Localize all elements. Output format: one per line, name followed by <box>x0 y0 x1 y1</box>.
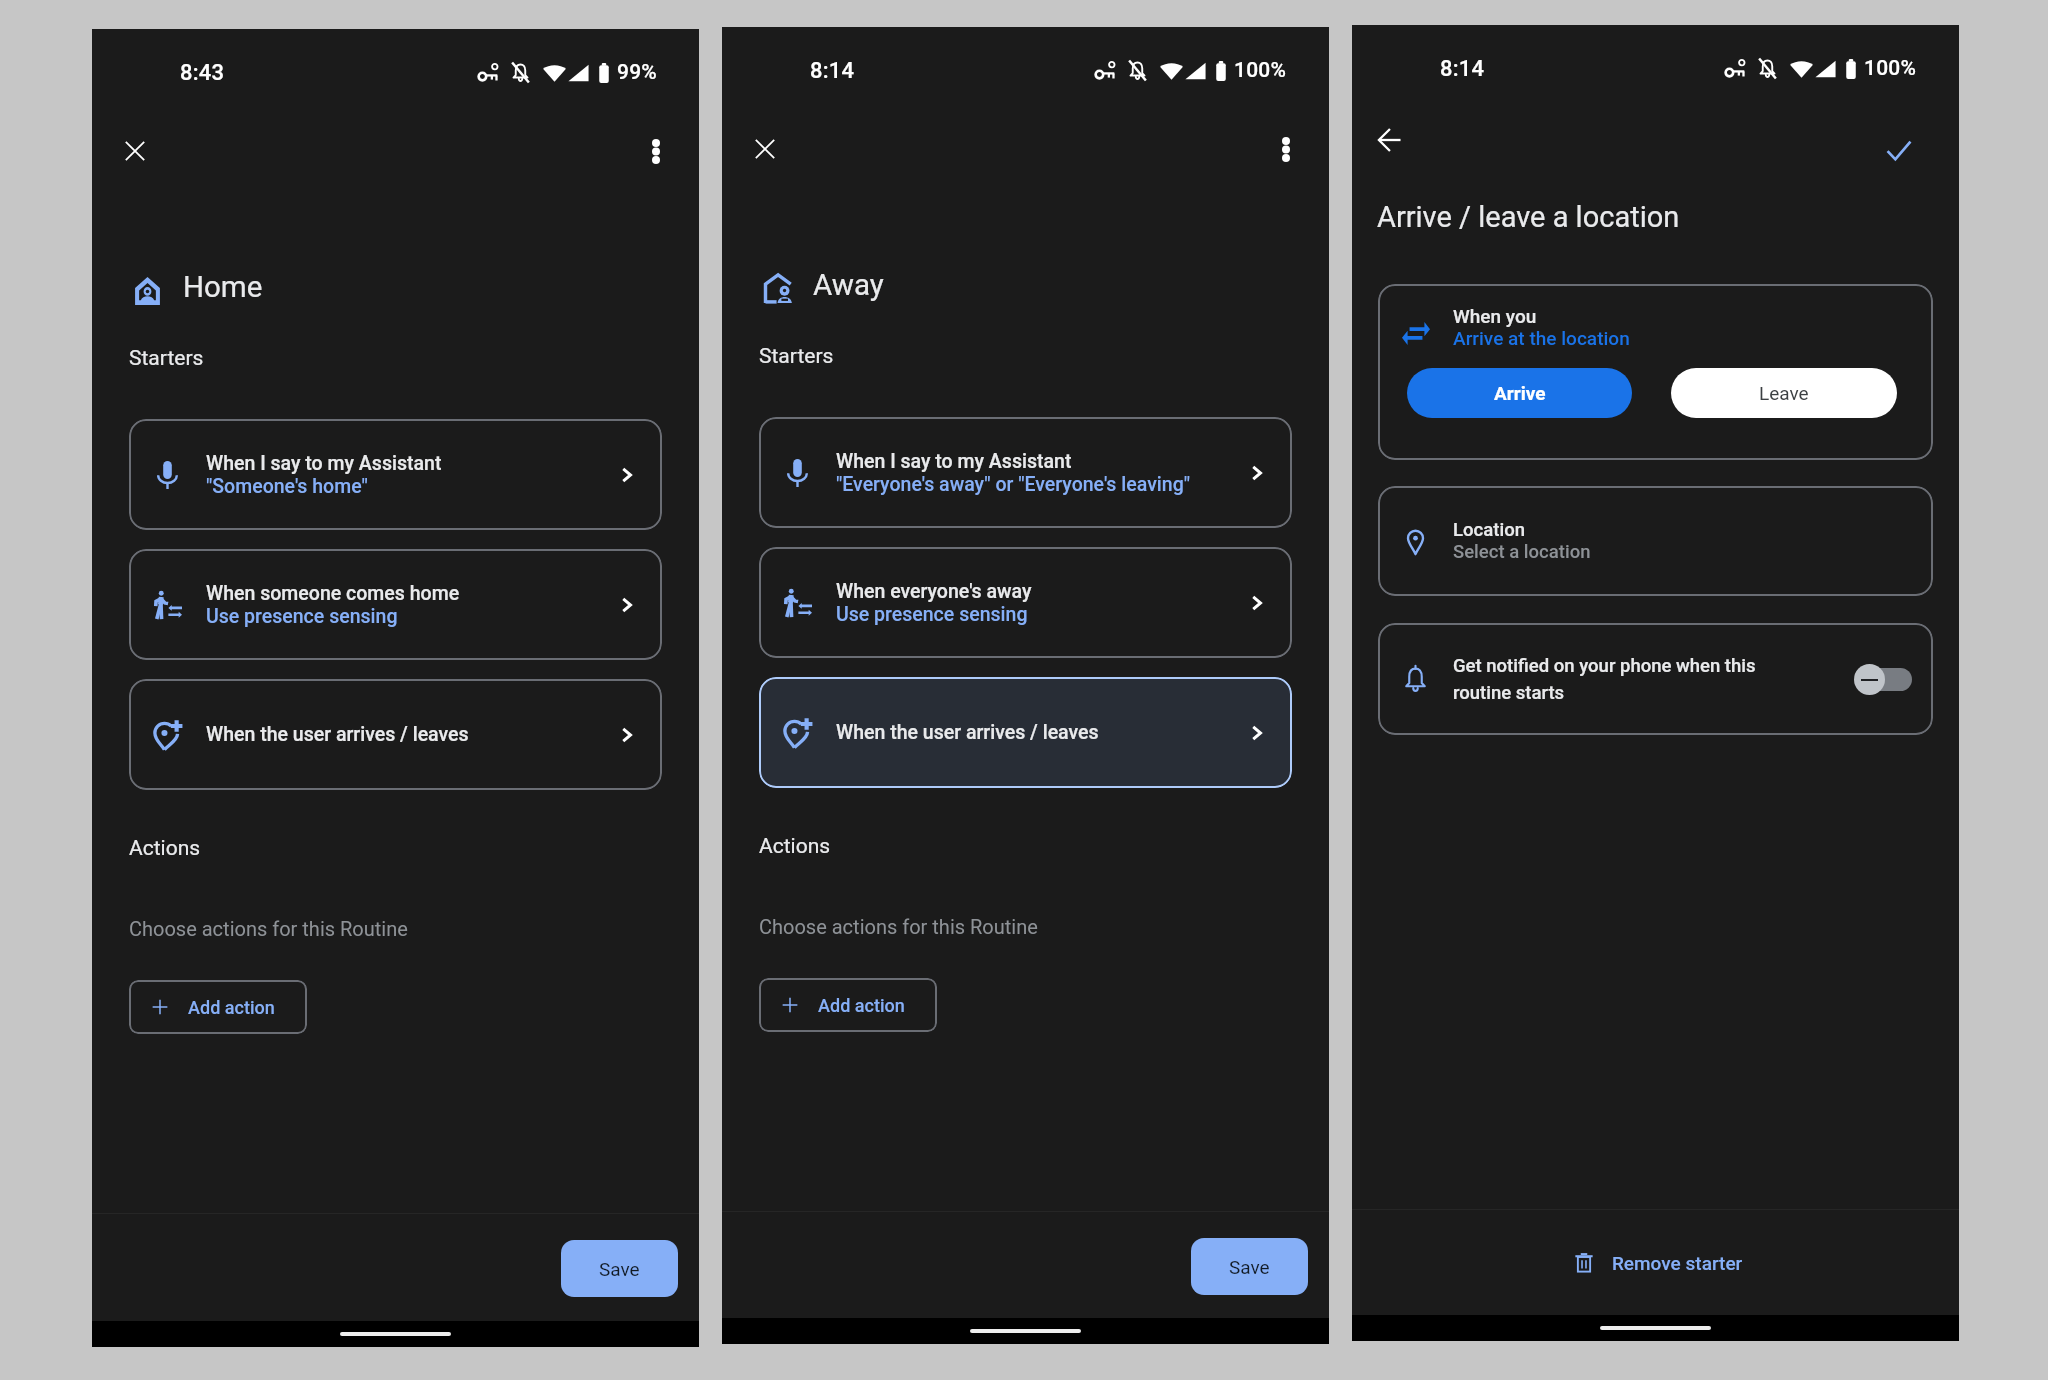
staticText: Use presence sensing <box>206 605 398 628</box>
staticText: When everyone's away <box>836 580 1032 603</box>
button[interactable]: Notification toggle <box>1854 663 1912 695</box>
button[interactable]: Add action <box>129 980 307 1034</box>
button[interactable]: Add action <box>759 978 937 1032</box>
button[interactable]: Back <box>1363 114 1415 166</box>
button[interactable]: When everyone's away <box>759 547 1292 658</box>
button[interactable]: Close <box>109 125 161 177</box>
button[interactable]: Location <box>1378 486 1933 596</box>
staticText: When I say to my Assistant <box>206 452 442 475</box>
button[interactable]: When I say to my Assistant <box>129 419 662 530</box>
staticText: Actions <box>759 834 831 859</box>
button[interactable]: More options <box>630 125 682 177</box>
staticText: Remove starter <box>1612 1252 1743 1274</box>
button[interactable]: Close <box>739 123 791 175</box>
button[interactable]: Remove starter <box>1355 1236 1962 1289</box>
staticText: Location <box>1453 519 1525 541</box>
button[interactable]: When the user arrives / leaves <box>759 677 1292 788</box>
button[interactable]: When you <box>1378 284 1933 460</box>
staticText: Add action <box>188 997 275 1018</box>
staticText: Starters <box>759 344 834 369</box>
button[interactable]: Get notified on your phone when this rou… <box>1378 623 1933 735</box>
staticText: Arrive / leave a location <box>1377 200 1680 234</box>
staticText: Get notified on your phone when this rou… <box>1453 655 1765 703</box>
button[interactable]: When I say to my Assistant <box>759 417 1292 528</box>
button[interactable]: When the user arrives / leaves <box>129 679 662 790</box>
staticText: When the user arrives / leaves <box>206 723 469 746</box>
staticText: Starters <box>129 346 204 371</box>
staticText: When someone comes home <box>206 582 460 605</box>
staticText: Save <box>1229 1256 1270 1278</box>
staticText: Arrive <box>1494 382 1546 404</box>
button[interactable]: Save <box>561 1240 678 1297</box>
staticText: Home <box>183 270 263 305</box>
staticText: Choose actions for this Routine <box>759 915 1038 938</box>
staticText: Use presence sensing <box>836 603 1028 626</box>
button[interactable]: Done <box>1873 125 1925 177</box>
staticText: When I say to my Assistant <box>836 450 1072 473</box>
staticText: Leave <box>1759 382 1809 404</box>
staticText: Actions <box>129 836 201 861</box>
staticText: Add action <box>818 995 905 1016</box>
staticText: 8:43 <box>180 60 225 86</box>
staticText: When you <box>1453 305 1537 327</box>
staticText: Select a location <box>1453 541 1591 563</box>
staticText: 99% <box>617 60 657 85</box>
button[interactable]: Leave <box>1671 368 1897 418</box>
staticText: 8:14 <box>810 58 855 84</box>
staticText: Save <box>599 1258 640 1280</box>
button[interactable]: Arrive <box>1407 368 1632 418</box>
staticText: 8:14 <box>1440 56 1485 82</box>
staticText: Choose actions for this Routine <box>129 917 408 940</box>
staticText: Arrive at the location <box>1453 327 1630 349</box>
button[interactable]: When someone comes home <box>129 549 662 660</box>
staticText: Away <box>813 268 884 303</box>
staticText: "Someone's home" <box>206 475 368 498</box>
staticText: 100% <box>1864 56 1917 81</box>
staticText: 100% <box>1234 58 1287 83</box>
staticText: "Everyone's away" or "Everyone's leaving… <box>836 473 1191 496</box>
button[interactable]: More options <box>1260 123 1312 175</box>
button[interactable]: Save <box>1191 1238 1308 1295</box>
staticText: When the user arrives / leaves <box>836 721 1099 744</box>
